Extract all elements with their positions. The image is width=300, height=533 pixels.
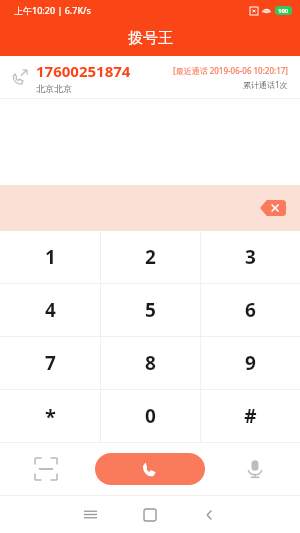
staticText: 2 (145, 244, 156, 270)
staticText: 1 (45, 244, 56, 270)
button[interactable]: 8 (101, 337, 200, 389)
button[interactable]: * (0, 390, 100, 442)
staticText: * (45, 403, 56, 430)
staticText: # (244, 403, 257, 429)
button[interactable]: Call (95, 453, 205, 485)
button[interactable]: 3 (201, 231, 300, 283)
button[interactable]: # (201, 390, 300, 442)
button[interactable]: Voice input (209, 443, 300, 495)
button[interactable]: 6 (201, 284, 300, 336)
button[interactable]: 9 (201, 337, 300, 389)
staticText: 7 (45, 350, 56, 376)
staticText: 5 (145, 297, 156, 323)
button[interactable]: Recents (60, 496, 120, 533)
staticText: 4 (45, 297, 56, 323)
button[interactable]: 4 (0, 284, 100, 336)
button[interactable]: 1 (0, 231, 100, 283)
button[interactable]: Home (120, 496, 180, 533)
button[interactable]: 0 (101, 390, 200, 442)
staticText: [最近通话 2019-06-06 10:20:17] (173, 65, 288, 76)
staticText: 上午10:20 | 6.7K/s (14, 4, 91, 16)
button[interactable]: 5 (101, 284, 200, 336)
staticText: 100 (278, 7, 289, 15)
button[interactable]: Scan (0, 443, 91, 495)
button[interactable]: 7 (0, 337, 100, 389)
staticText: 北京北京 (36, 83, 72, 94)
button[interactable]: Delete (260, 200, 286, 216)
other: Outgoing call (12, 69, 28, 85)
button[interactable]: Outgoing call (0, 56, 300, 98)
staticText: 8 (145, 350, 156, 376)
staticText: 6 (245, 297, 256, 323)
staticText: 3 (245, 244, 256, 270)
staticText: 0 (145, 403, 156, 429)
staticText: 17600251874 (36, 61, 131, 81)
staticText: 拨号王 (128, 29, 173, 48)
button[interactable]: 2 (101, 231, 200, 283)
staticText: 9 (245, 350, 256, 376)
button[interactable]: Back (180, 496, 240, 533)
staticText: 累计通话1次 (243, 79, 288, 90)
